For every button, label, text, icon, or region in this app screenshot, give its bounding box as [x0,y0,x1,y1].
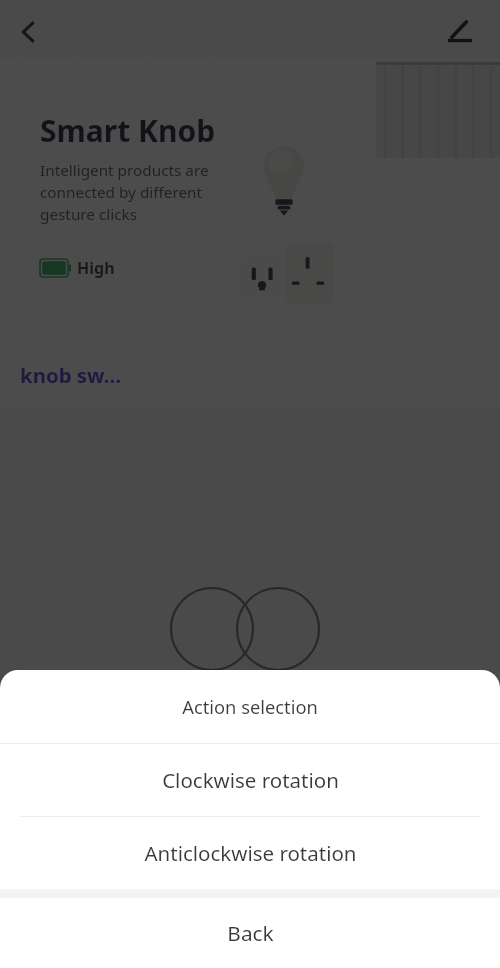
button[interactable]: Edit [438,8,482,52]
button[interactable]: Clockwise rotation [0,744,500,816]
button[interactable]: Anticlockwise rotation [0,817,500,889]
staticText: Anticlockwise rotation [144,839,357,867]
staticText: High [77,257,115,279]
staticText: Smart Knob [40,110,216,151]
staticText: Intelligent products are connected by di… [40,160,209,225]
staticText: Clockwise rotation [162,766,339,794]
staticText: Back [227,919,274,947]
button[interactable]: Action selection [0,670,500,743]
staticText: knob sw… [20,361,122,389]
button[interactable]: Back [6,10,50,54]
staticText: Action selection [182,694,318,719]
button[interactable]: Back [0,898,500,968]
